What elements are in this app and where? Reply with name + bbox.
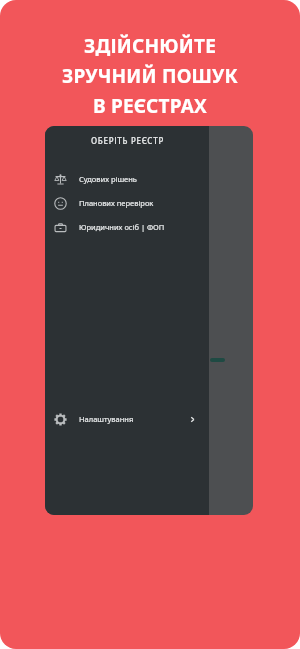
staticText: Планових перевірок <box>79 198 154 208</box>
button[interactable]: Судових рішень <box>45 167 209 191</box>
staticText: Судових рішень <box>79 174 137 184</box>
staticText: Юридичних осіб | ФОП <box>79 222 165 232</box>
staticText: ЗДІЙСНЮЙТЕ <box>12 33 288 59</box>
button[interactable]: Юридичних осіб | ФОП <box>45 215 209 239</box>
staticText: Налаштування <box>79 414 134 424</box>
staticText: В РЕЄСТРАХ <box>12 93 288 119</box>
staticText: ЗРУЧНИЙ ПОШУК <box>12 63 288 89</box>
staticText: ОБЕРІТЬ РЕЄСТР <box>91 135 164 146</box>
button[interactable]: Планових перевірок <box>45 191 209 215</box>
button[interactable]: Settings <box>45 402 209 436</box>
other: Settings <box>54 413 67 426</box>
